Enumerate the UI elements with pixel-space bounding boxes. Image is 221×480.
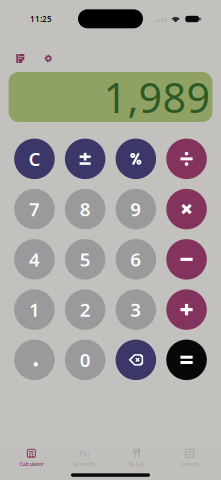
- button[interactable]: 0: [65, 340, 105, 380]
- button[interactable]: Plus minus: [65, 139, 105, 179]
- staticText: 2: [80, 297, 91, 322]
- staticText: 7: [29, 197, 40, 221]
- button[interactable]: 3: [116, 289, 156, 330]
- button[interactable]: Tip Calc: [110, 447, 163, 469]
- button[interactable]: 9: [116, 189, 156, 229]
- button[interactable]: C: [14, 139, 55, 179]
- staticText: Calculator: [19, 460, 43, 467]
- staticText: 9: [130, 197, 141, 221]
- button[interactable]: Plus: [166, 289, 207, 330]
- button[interactable]: 7: [14, 189, 55, 229]
- staticText: 6: [130, 247, 141, 272]
- button[interactable]: 1: [14, 289, 55, 330]
- button[interactable]: 4: [14, 239, 55, 280]
- staticText: C: [28, 146, 40, 171]
- button[interactable]: Equals: [166, 340, 207, 380]
- button[interactable]: 5: [65, 239, 105, 280]
- staticText: 1,989: [103, 70, 210, 124]
- staticText: 0: [80, 347, 91, 372]
- button[interactable]: Delete: [116, 340, 156, 380]
- staticText: 5: [80, 247, 91, 272]
- staticText: 3: [130, 297, 141, 322]
- staticText: 11:25: [30, 13, 52, 24]
- button[interactable]: Divide: [166, 139, 207, 179]
- button[interactable]: Multiply: [166, 189, 207, 229]
- button[interactable]: Decimal point: [14, 340, 55, 380]
- button[interactable]: History: [3, 48, 37, 68]
- staticText: Tip Calc: [128, 461, 146, 468]
- staticText: f(x): [79, 449, 89, 458]
- button[interactable]: Calculator: [5, 447, 58, 469]
- staticText: Convert: [180, 460, 199, 467]
- button[interactable]: Percent: [116, 139, 156, 179]
- button[interactable]: 8: [65, 189, 105, 229]
- staticText: 8: [80, 197, 91, 221]
- button[interactable]: Convert: [163, 447, 216, 469]
- staticText: 4: [29, 247, 40, 272]
- button[interactable]: Minus: [166, 239, 207, 280]
- button[interactable]: 2: [65, 289, 105, 330]
- staticText: 1: [29, 297, 40, 322]
- button[interactable]: f(x): [58, 447, 111, 469]
- button[interactable]: 6: [116, 239, 156, 280]
- button[interactable]: Settings: [37, 48, 59, 68]
- staticText: Scientific: [73, 460, 95, 467]
